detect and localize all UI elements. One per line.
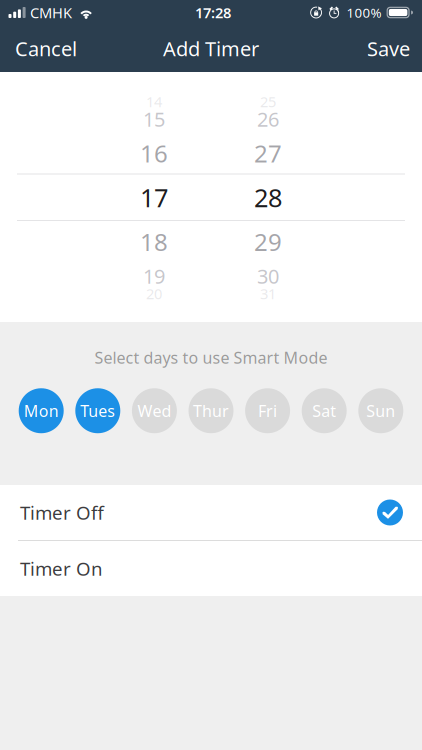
staticText: Mon: [24, 400, 59, 421]
staticText: 26: [257, 106, 279, 132]
button[interactable]: Tues: [75, 388, 120, 433]
staticText: Fri: [258, 400, 277, 421]
staticText: 29: [254, 226, 282, 258]
staticText: 20: [146, 284, 162, 303]
button[interactable]: Cancel: [0, 25, 89, 72]
staticText: Select days to use Smart Mode: [94, 347, 327, 368]
staticText: CMHK: [30, 3, 72, 22]
button[interactable]: Timer Off: [0, 485, 422, 540]
staticText: 30: [257, 263, 279, 289]
button[interactable]: Timer On: [0, 541, 422, 596]
button[interactable]: Sat: [302, 388, 347, 433]
button[interactable]: Save: [352, 25, 422, 72]
staticText: Thur: [193, 400, 229, 421]
staticText: 18: [140, 226, 168, 258]
button[interactable]: Wed: [132, 388, 177, 433]
staticText: 16: [140, 137, 168, 169]
staticText: Add Timer: [163, 35, 259, 62]
staticText: Sat: [312, 400, 336, 421]
staticText: Tues: [80, 400, 115, 421]
staticText: Sun: [366, 400, 395, 421]
staticText: Wed: [137, 400, 171, 421]
staticText: 100%: [347, 4, 382, 21]
staticText: 25: [260, 92, 276, 111]
button[interactable]: Thur: [188, 388, 233, 433]
staticText: 14: [146, 92, 162, 111]
staticText: 15: [143, 106, 165, 132]
button[interactable]: Mon: [19, 388, 64, 433]
staticText: 31: [260, 284, 276, 303]
staticText: Cancel: [15, 35, 77, 62]
staticText: Save: [367, 35, 410, 62]
button[interactable]: Sun: [358, 388, 403, 433]
staticText: 17:28: [195, 3, 231, 22]
button[interactable]: Fri: [245, 388, 290, 433]
staticText: 19: [143, 263, 165, 289]
staticText: 17: [140, 181, 168, 214]
staticText: 27: [254, 137, 282, 169]
staticText: 28: [254, 181, 282, 214]
staticText: Timer On: [20, 556, 103, 581]
staticText: Timer Off: [20, 500, 104, 525]
